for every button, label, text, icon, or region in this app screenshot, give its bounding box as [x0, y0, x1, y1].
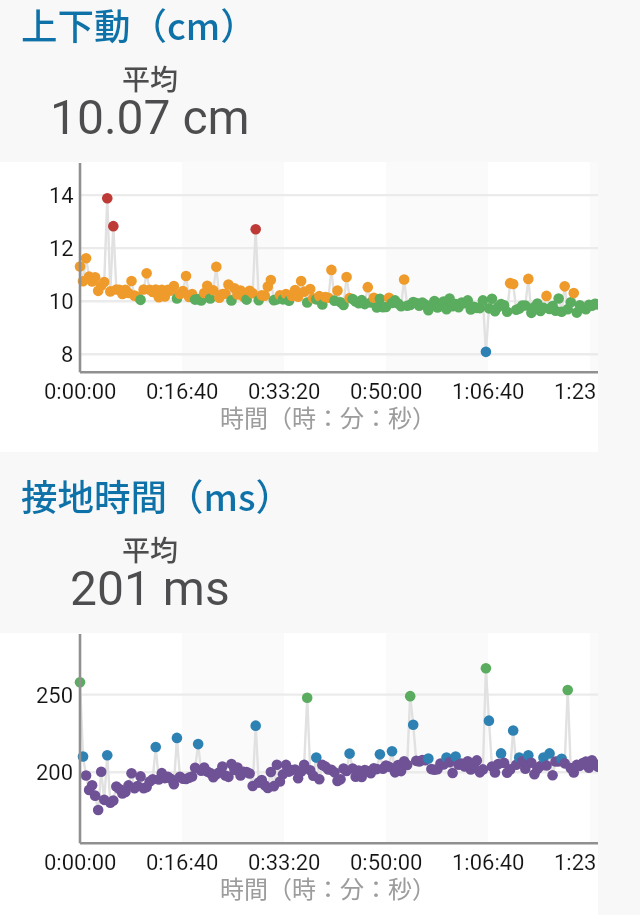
staticText: 0:33:20 — [248, 379, 321, 405]
staticText: 1:23:20 — [554, 379, 598, 405]
staticText: 1:23:20 — [554, 850, 598, 876]
staticText: 接地時間（ms） — [21, 469, 292, 522]
staticText: 1:06:40 — [452, 379, 525, 405]
staticText: 10.07 cm — [50, 89, 250, 145]
staticText: 平均 — [122, 529, 179, 570]
staticText: 1:06:40 — [452, 850, 525, 876]
staticText: 250 — [36, 683, 74, 709]
staticText: 12 — [49, 236, 74, 262]
staticText: 200 — [36, 760, 74, 786]
staticText: 上下動（cm） — [21, 0, 257, 51]
button[interactable]: 上下動（cm） — [0, 0, 640, 162]
button[interactable]: 接地時間グラフ — [0, 633, 598, 915]
staticText: 14 — [49, 183, 74, 209]
staticText: 10 — [49, 289, 74, 315]
button[interactable]: 接地時間（ms） — [0, 452, 640, 633]
staticText: 8 — [61, 342, 74, 368]
staticText: 平均 — [122, 58, 179, 99]
staticText: 0:16:40 — [146, 379, 219, 405]
staticText: 時間（時：分：秒） — [220, 399, 436, 434]
staticText: 0:16:40 — [146, 850, 219, 876]
staticText: 0:50:00 — [350, 379, 423, 405]
button[interactable]: 上下動グラフ — [0, 162, 598, 452]
staticText: 0:00:00 — [44, 379, 117, 405]
staticText: 201 ms — [70, 560, 230, 616]
staticText: 0:33:20 — [248, 850, 321, 876]
staticText: 0:00:00 — [44, 850, 117, 876]
staticText: 0:50:00 — [350, 850, 423, 876]
staticText: 時間（時：分：秒） — [220, 870, 436, 905]
